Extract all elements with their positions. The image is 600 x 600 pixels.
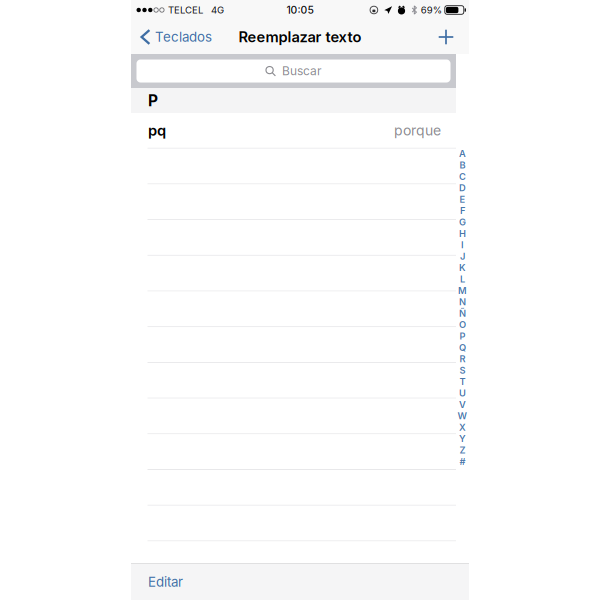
staticText: F: [460, 205, 465, 216]
staticText: Y: [459, 433, 466, 444]
staticText: L: [460, 273, 465, 285]
button[interactable]: pq: [131, 113, 456, 148]
staticText: J: [460, 251, 465, 262]
staticText: S: [459, 365, 465, 376]
staticText: Buscar: [282, 64, 322, 78]
staticText: M: [458, 285, 467, 296]
staticText: Reemplazar texto: [238, 28, 361, 46]
staticText: E: [459, 194, 465, 205]
button[interactable]: Añadir: [426, 20, 469, 54]
staticText: Ñ: [459, 308, 466, 319]
staticText: V: [459, 399, 466, 410]
staticText: Z: [459, 444, 465, 456]
staticText: R: [459, 353, 465, 365]
staticText: pq: [148, 121, 166, 139]
staticText: 69%: [421, 4, 442, 16]
staticText: 10:05: [286, 4, 313, 16]
staticText: C: [459, 171, 466, 182]
staticText: 4G: [211, 4, 224, 16]
button[interactable]: Índice alfabético: [456, 148, 469, 467]
staticText: O: [459, 319, 466, 330]
staticText: P: [459, 330, 465, 342]
staticText: N: [459, 296, 466, 308]
staticText: TELCEL: [168, 4, 203, 16]
staticText: H: [459, 228, 466, 239]
staticText: porque: [394, 122, 441, 139]
staticText: I: [461, 239, 464, 251]
staticText: D: [459, 182, 466, 194]
staticText: G: [459, 216, 466, 228]
staticText: W: [457, 410, 467, 422]
staticText: Editar: [148, 574, 183, 590]
staticText: K: [459, 262, 466, 273]
staticText: P: [148, 91, 158, 110]
staticText: T: [459, 376, 465, 387]
button[interactable]: Editar: [131, 564, 195, 600]
staticText: U: [459, 387, 466, 399]
staticText: #: [459, 456, 465, 467]
staticText: Teclados: [155, 29, 212, 45]
staticText: X: [459, 422, 466, 433]
staticText: A: [459, 148, 466, 159]
staticText: B: [459, 159, 465, 171]
button[interactable]: Buscar: [136, 59, 450, 82]
button[interactable]: Teclados: [131, 20, 220, 54]
staticText: Q: [459, 342, 466, 353]
